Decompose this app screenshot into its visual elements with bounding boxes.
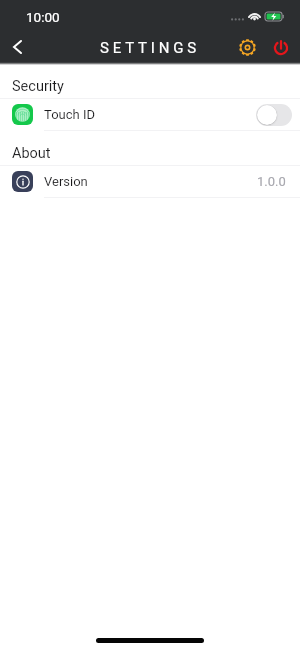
staticText: 1.0.0 [257, 174, 286, 189]
button[interactable]: Touch ID toggle, off [256, 104, 292, 126]
button[interactable]: Settings [233, 33, 261, 61]
button[interactable]: Power [267, 34, 295, 62]
staticText: 10:00 [26, 9, 60, 25]
staticText: Security [12, 78, 64, 95]
staticText: About [12, 145, 51, 162]
staticText: Version [44, 174, 88, 189]
button[interactable]: Touch ID [0, 99, 300, 131]
staticText: Touch ID [44, 107, 95, 122]
button[interactable]: Version [0, 166, 300, 198]
staticText: SETTINGS [100, 39, 200, 57]
button[interactable]: Back [1, 31, 33, 63]
